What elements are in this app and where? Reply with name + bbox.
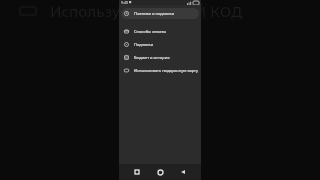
button[interactable]: Платежи и подписки: [119, 7, 201, 20]
staticText: Использовать подарочную карту: [134, 68, 198, 73]
staticText: Используйте ОЧНЫЙ КОД: [50, 1, 243, 21]
staticText: Бюджет и история: [134, 55, 170, 60]
button[interactable]: Подписки: [119, 38, 201, 51]
button[interactable]: Способы оплаты: [119, 25, 201, 38]
button[interactable]: Использовать подарочную карту: [119, 64, 201, 77]
staticText: Способы оплаты: [134, 29, 167, 34]
staticText: Платежи и подписки: [134, 11, 175, 16]
button[interactable]: Recent apps: [132, 167, 142, 177]
staticText: Подписки: [134, 42, 154, 47]
staticText: 9:40: [121, 0, 128, 5]
button[interactable]: Home: [155, 167, 165, 177]
button[interactable]: Бюджет и история: [119, 51, 201, 64]
button[interactable]: Back: [178, 167, 188, 177]
